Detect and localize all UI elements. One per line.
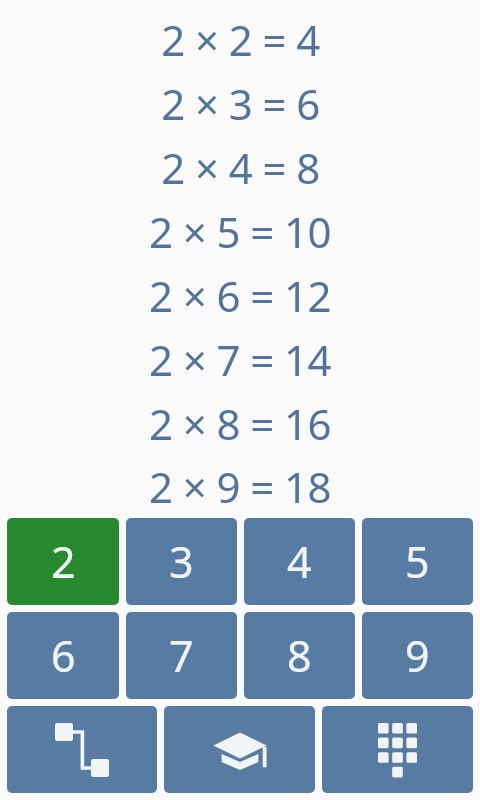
staticText: 7: [169, 626, 194, 685]
staticText: 2 × 5 = 10: [149, 203, 331, 260]
button[interactable]: 3: [126, 518, 237, 605]
staticText: 2: [51, 532, 76, 591]
staticText: 4: [287, 532, 312, 591]
staticText: 9: [405, 626, 430, 685]
staticText: 5: [405, 532, 430, 591]
staticText: 2 × 8 = 16: [149, 395, 331, 452]
button[interactable]: Shuffle: [7, 706, 157, 793]
staticText: 2 × 6 = 12: [149, 267, 331, 324]
button[interactable]: 9: [362, 612, 473, 699]
button[interactable]: 6: [7, 612, 119, 699]
button[interactable]: 2: [7, 518, 119, 605]
button[interactable]: 8: [244, 612, 355, 699]
staticText: 6: [51, 626, 76, 685]
staticText: 2 × 3 = 6: [161, 75, 320, 132]
button[interactable]: Learn: [164, 706, 315, 793]
staticText: 2 × 4 = 8: [161, 139, 320, 196]
button[interactable]: 5: [362, 518, 473, 605]
button[interactable]: 4: [244, 518, 355, 605]
staticText: 2 × 2 = 4: [161, 11, 320, 68]
staticText: 8: [287, 626, 312, 685]
button[interactable]: 7: [126, 612, 237, 699]
staticText: 2 × 7 = 14: [149, 331, 331, 388]
staticText: 3: [169, 532, 194, 591]
staticText: 2 × 9 = 18: [149, 458, 331, 515]
button[interactable]: Dialpad: [322, 706, 473, 793]
